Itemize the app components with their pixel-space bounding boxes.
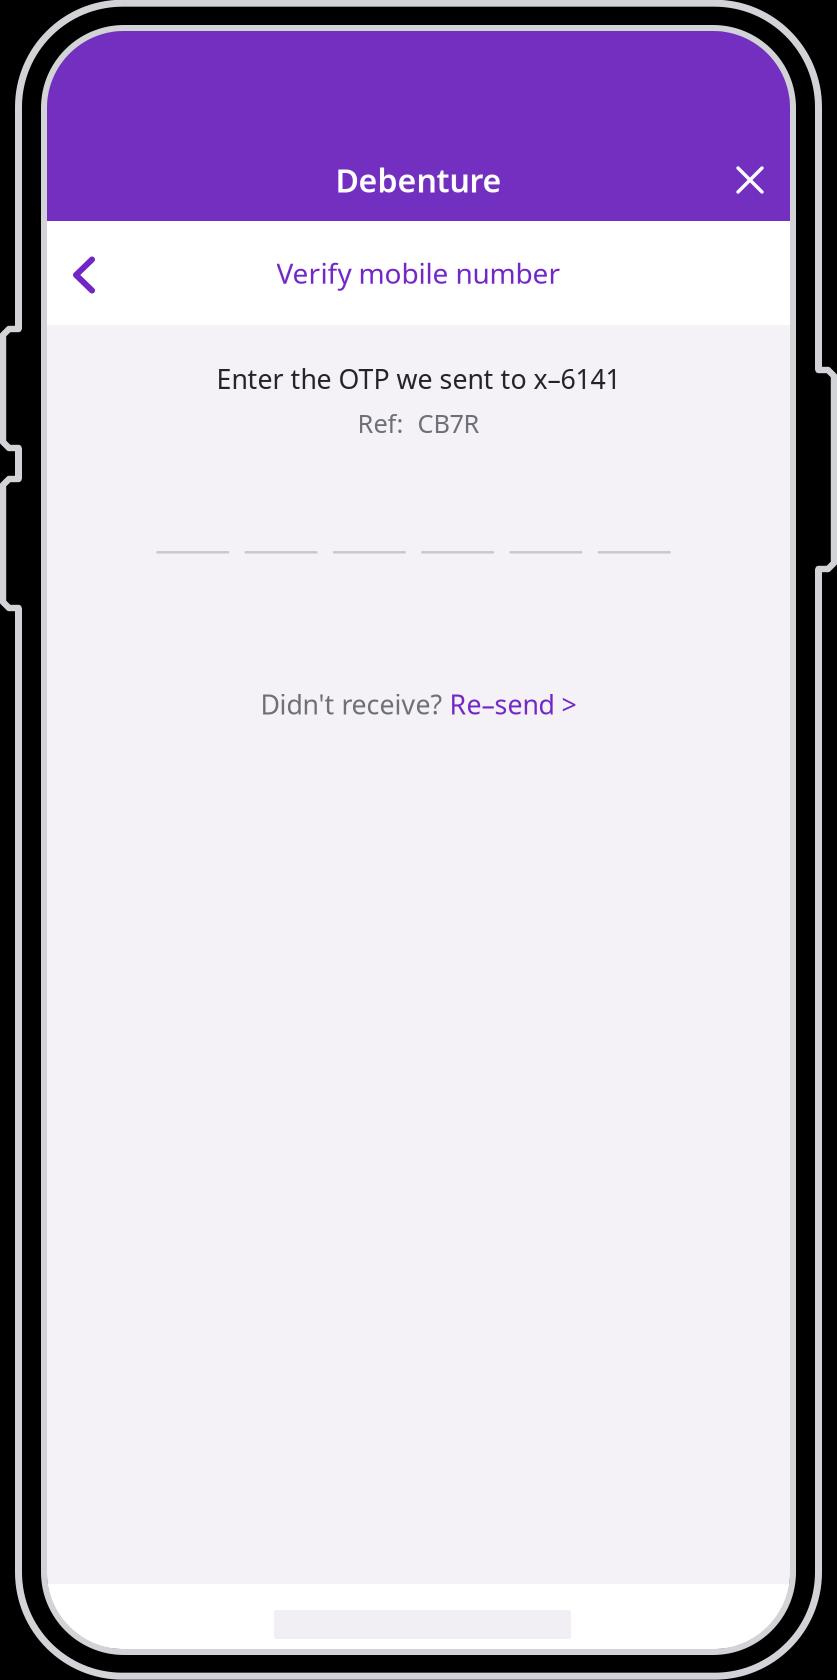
button[interactable]: Back bbox=[47, 237, 119, 309]
staticText: Ref: CB7R bbox=[357, 406, 479, 440]
staticText: Debenture bbox=[335, 159, 501, 201]
button[interactable]: Close bbox=[721, 151, 779, 209]
staticText: Enter the OTP we sent to x–6141 bbox=[216, 361, 620, 396]
staticText: Re–send > bbox=[449, 687, 576, 722]
staticText: Verify mobile number bbox=[276, 254, 560, 292]
staticText: Didn't receive? bbox=[260, 687, 449, 722]
button[interactable]: Re–send > bbox=[449, 687, 576, 722]
